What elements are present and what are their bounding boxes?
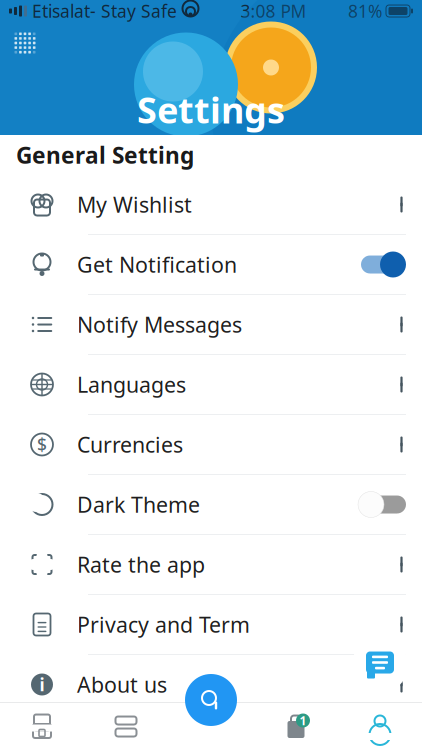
staticText: Dark Theme: [77, 490, 200, 519]
button[interactable]: $: [0, 415, 422, 475]
staticText: Notify Messages: [77, 310, 242, 339]
staticText: Rate the app: [77, 550, 205, 579]
staticText: i: [39, 673, 44, 696]
staticText: Etisalat- Stay Safe: [32, 0, 177, 22]
staticText: Get Notification: [77, 250, 237, 279]
staticText: 81%: [348, 0, 382, 22]
button[interactable]: Menu: [4, 22, 46, 64]
staticText: 3:08 PM: [240, 0, 306, 22]
button[interactable]: Languages: [0, 355, 422, 415]
button[interactable]: Cart, 1 item: [254, 703, 338, 750]
button[interactable]: Categories: [84, 703, 168, 750]
staticText: About us: [77, 670, 167, 699]
button[interactable]: Dark Theme: [0, 475, 422, 535]
staticText: General Setting: [16, 140, 194, 170]
button[interactable]: Home: [0, 703, 84, 750]
button[interactable]: My Wishlist: [0, 175, 422, 235]
staticText: 1: [299, 712, 306, 728]
button[interactable]: Chat support: [352, 637, 408, 693]
staticText: $: [37, 433, 47, 456]
button[interactable]: Search: [185, 674, 237, 726]
button[interactable]: Get Notification: [0, 235, 422, 295]
button[interactable]: Rate the app: [0, 535, 422, 595]
staticText: My Wishlist: [77, 190, 192, 219]
button[interactable]: Account: [338, 703, 422, 750]
button[interactable]: i: [0, 655, 422, 714]
staticText: Privacy and Term: [77, 610, 250, 639]
button[interactable]: Privacy and Term: [0, 595, 422, 655]
button[interactable]: Notify Messages: [0, 295, 422, 355]
staticText: Currencies: [77, 430, 183, 459]
staticText: Languages: [77, 370, 186, 399]
staticText: Settings: [137, 86, 285, 133]
